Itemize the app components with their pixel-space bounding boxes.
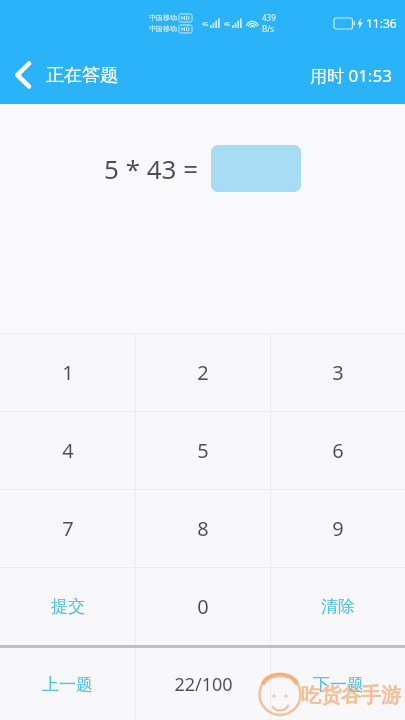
staticText: 0	[197, 593, 209, 620]
button[interactable]: 5	[136, 412, 270, 489]
button[interactable]: Back	[0, 52, 46, 98]
staticText: 清除	[321, 596, 355, 617]
staticText: 2	[197, 359, 209, 386]
staticText: 下一题	[313, 674, 364, 695]
staticText: 439	[262, 12, 276, 23]
button[interactable]: 提交	[0, 568, 135, 645]
button[interactable]: Answer field	[211, 145, 301, 192]
button[interactable]: 6	[271, 412, 405, 489]
staticText: B/s	[262, 23, 275, 34]
staticText: 4G	[202, 21, 209, 28]
staticText: 用时 01:53	[310, 64, 392, 87]
staticText: 8	[197, 515, 209, 542]
button[interactable]: 8	[136, 490, 270, 567]
button[interactable]: 3	[271, 334, 405, 411]
staticText: 4	[62, 437, 74, 464]
staticText: 11:36	[366, 15, 397, 31]
staticText: 9	[332, 515, 344, 542]
staticText: 1	[62, 359, 74, 386]
staticText: 中国移动	[149, 13, 177, 22]
staticText: 3	[332, 359, 344, 386]
staticText: 5	[197, 437, 209, 464]
staticText: 上一题	[42, 674, 93, 695]
staticText: 吃货谷手游	[301, 683, 401, 708]
button[interactable]: 4	[0, 412, 135, 489]
staticText: 22/100	[174, 672, 233, 697]
button[interactable]: 清除	[271, 568, 405, 645]
button[interactable]: 上一题	[0, 648, 135, 720]
button[interactable]: 7	[0, 490, 135, 567]
staticText: 中国移动	[149, 24, 177, 33]
staticText: 6	[332, 437, 344, 464]
button[interactable]: 22/100	[136, 648, 270, 720]
button[interactable]: 9	[271, 490, 405, 567]
staticText: 提交	[51, 596, 85, 617]
staticText: 正在答题	[46, 64, 118, 87]
staticText: 4G	[224, 21, 231, 28]
button[interactable]: 0	[136, 568, 270, 645]
button[interactable]: 2	[136, 334, 270, 411]
staticText: 7	[62, 515, 74, 542]
button[interactable]: 下一题	[271, 648, 405, 720]
button[interactable]: 1	[0, 334, 135, 411]
staticText: 5 * 43 =	[104, 151, 199, 186]
